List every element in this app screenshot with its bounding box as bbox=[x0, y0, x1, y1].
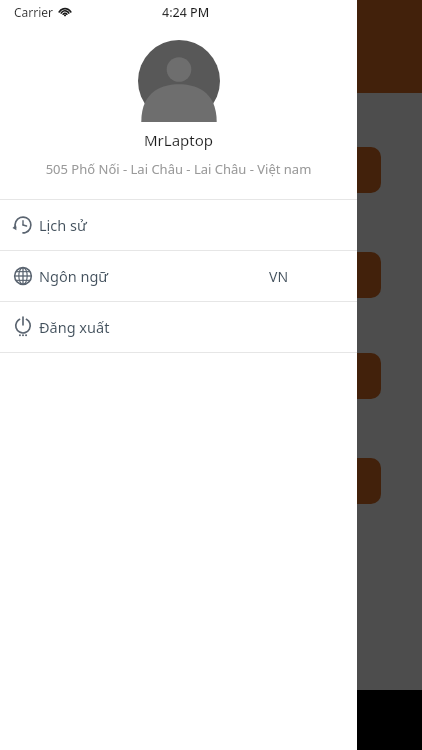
staticText: Đăng xuất bbox=[39, 317, 110, 337]
other: Log out bbox=[12, 316, 34, 338]
button[interactable]: History bbox=[0, 200, 357, 250]
other: History bbox=[12, 214, 34, 236]
staticText: MrLaptop bbox=[0, 130, 357, 150]
other: Language bbox=[12, 265, 34, 287]
staticText: VN bbox=[269, 267, 289, 286]
staticText: Carrier bbox=[14, 4, 54, 20]
button[interactable]: Log out bbox=[0, 302, 357, 352]
staticText: Ngôn ngữ bbox=[39, 266, 109, 286]
button[interactable]: Language bbox=[0, 251, 357, 301]
staticText: Lịch sử bbox=[39, 215, 87, 235]
staticText: 505 Phố Nối - Lai Châu - Lai Châu - Việt… bbox=[0, 160, 357, 178]
staticText: 4:24 PM bbox=[162, 4, 210, 21]
